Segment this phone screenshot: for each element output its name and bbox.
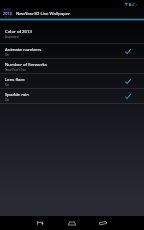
staticText: On — [5, 83, 10, 87]
staticText: Animate numbers — [5, 46, 42, 52]
staticText: On — [5, 53, 10, 57]
staticText: Lens flare — [5, 76, 25, 82]
button[interactable]: Toggle setting — [121, 89, 133, 103]
button[interactable]: Color of 2013 — [0, 24, 144, 43]
staticText: Animated — [5, 35, 19, 39]
staticText: 2013 — [3, 11, 12, 16]
staticText: On — [5, 98, 10, 102]
staticText: New Year's Eve — [5, 68, 27, 72]
staticText: Number of fireworks — [5, 61, 47, 67]
button[interactable]: Toggle setting — [121, 44, 133, 58]
button[interactable]: Toggle setting — [121, 74, 133, 88]
button[interactable]: Back — [37, 216, 45, 230]
button[interactable]: 2013 — [0, 8, 144, 18]
button[interactable]: Sparkle rain — [0, 89, 144, 103]
button[interactable]: Recent apps — [99, 216, 107, 230]
button[interactable]: Lens flare — [0, 74, 144, 88]
button[interactable]: Number of fireworks — [0, 59, 144, 73]
button[interactable]: Home — [68, 216, 76, 230]
staticText: Color of 2013 — [5, 28, 32, 34]
button[interactable]: Animate numbers — [0, 44, 144, 58]
staticText: Sparkle rain — [5, 91, 29, 97]
staticText: NewYear3D Live Wallpaper — [16, 10, 71, 16]
